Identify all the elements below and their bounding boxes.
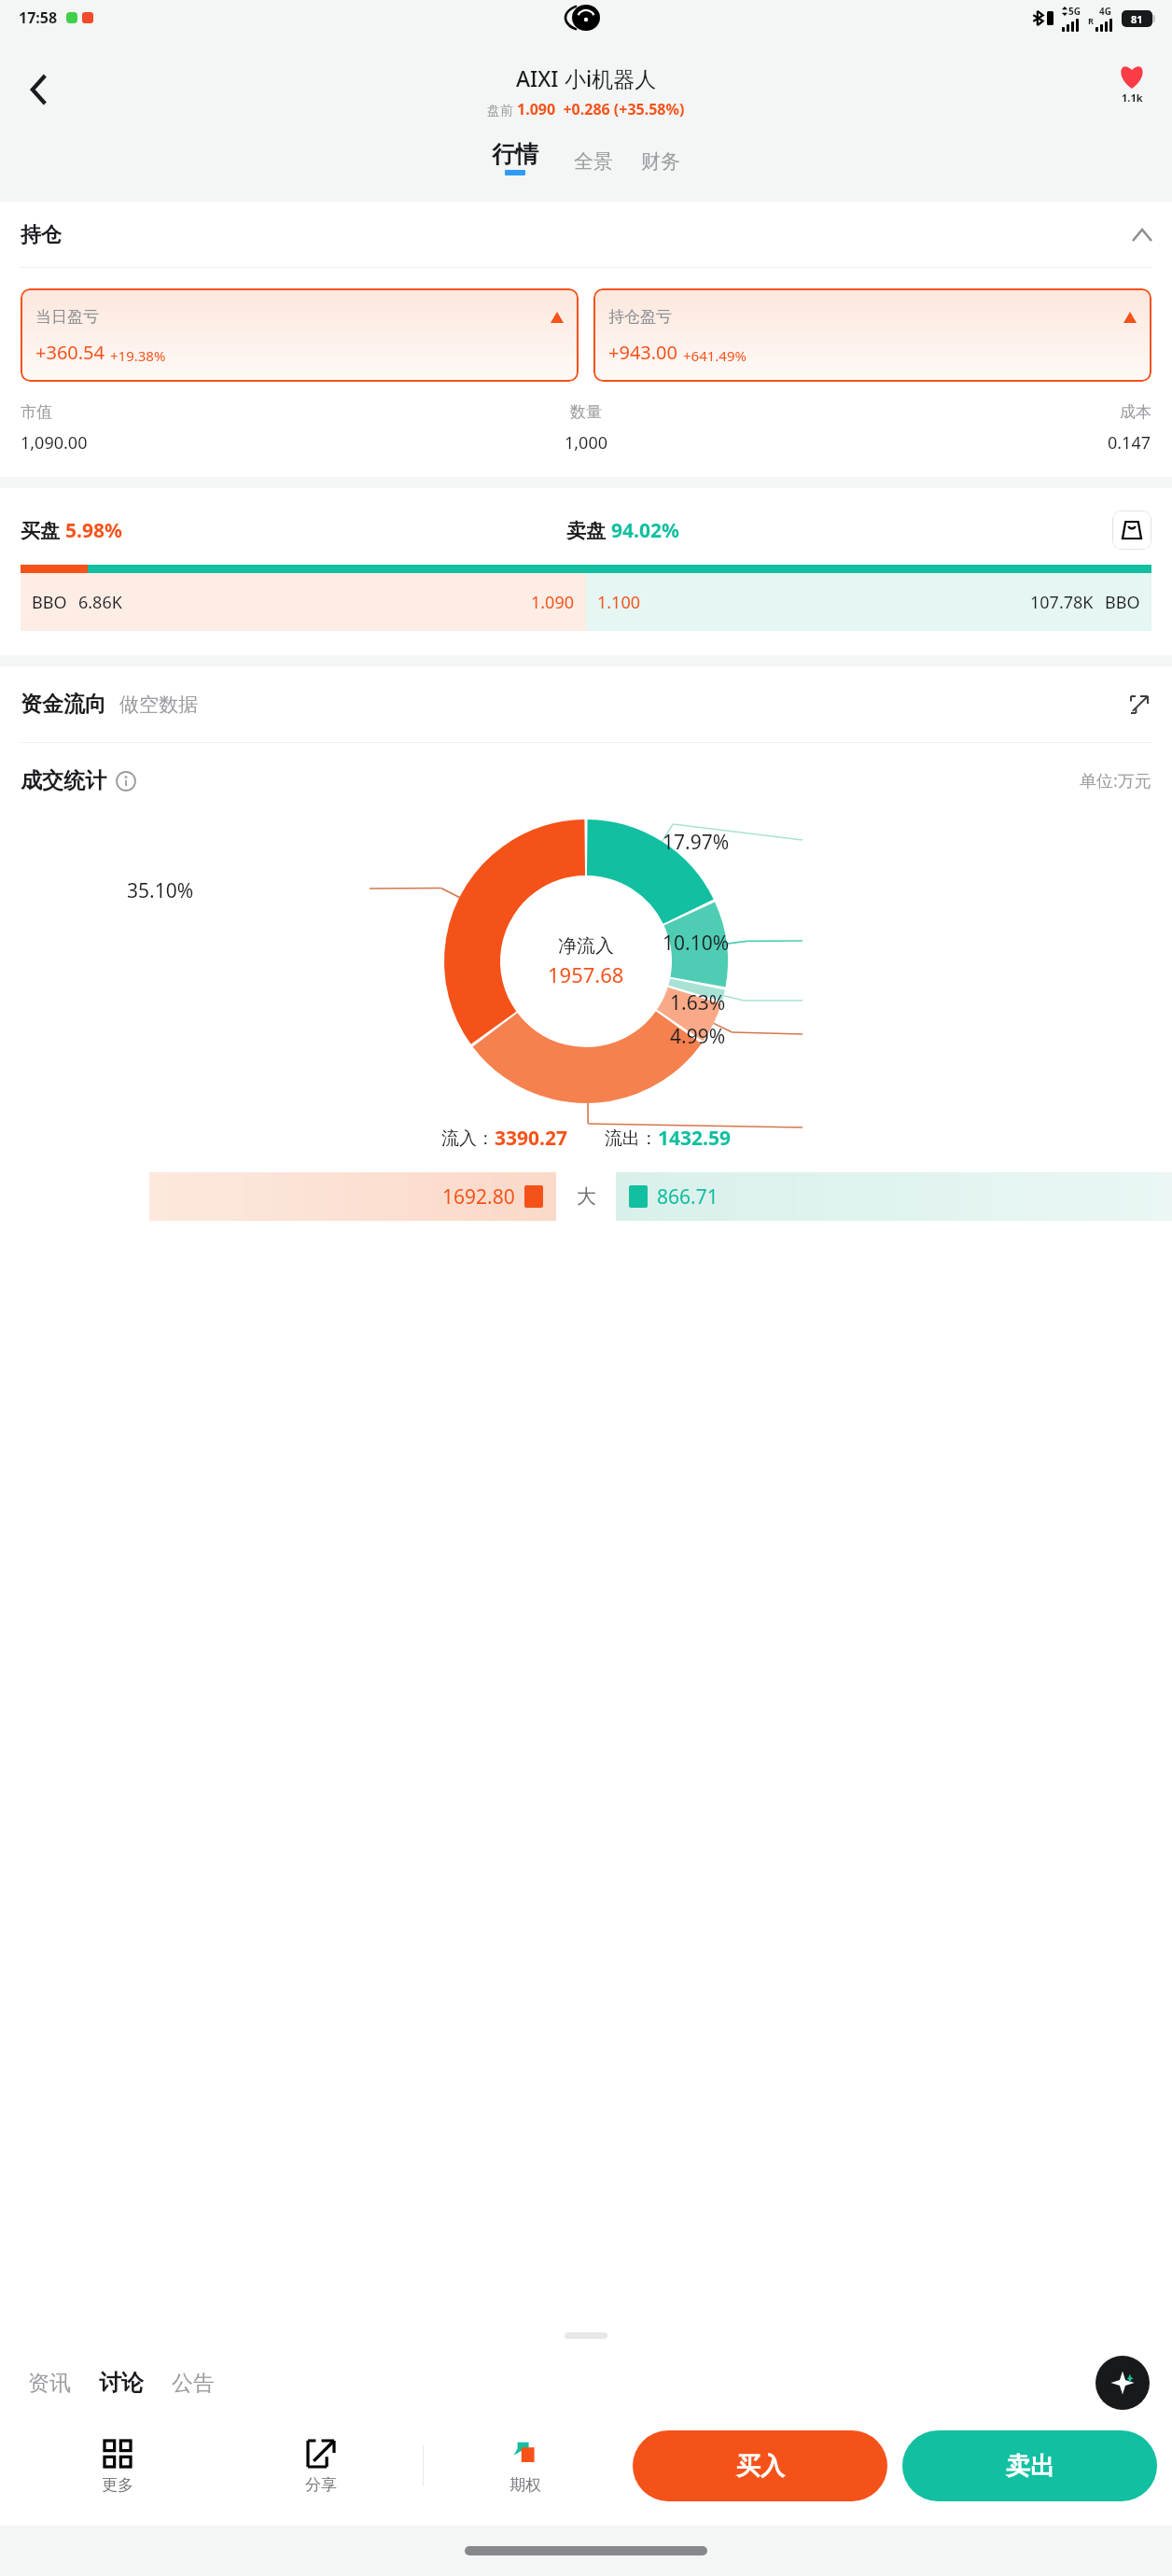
button[interactable]: 期权 (424, 2434, 627, 2499)
staticText: 5G (1068, 5, 1081, 18)
staticText: R (1088, 15, 1094, 26)
button[interactable]: 全景 (568, 147, 619, 175)
button[interactable]: 资金流向 (21, 691, 106, 718)
staticText: 6.86K (78, 591, 122, 614)
staticText: 1.100 (597, 591, 641, 614)
button[interactable]: 公告 (166, 2364, 220, 2402)
staticText: 流出： (605, 1127, 658, 1150)
staticText: +641.49% (683, 346, 746, 365)
staticText: 1,000 (565, 431, 608, 455)
staticText: 行情 (492, 140, 538, 169)
staticText: 5.98% (65, 517, 122, 544)
button[interactable]: 资讯 (22, 2364, 77, 2402)
staticText: +19.38% (110, 346, 166, 365)
staticText: 35.10% (127, 877, 194, 904)
staticText: 更多 (102, 2475, 133, 2495)
staticText: 资金流向 (21, 691, 106, 718)
button[interactable]: AI assistant (1095, 2356, 1150, 2410)
staticText: 1432.59 (658, 1125, 731, 1152)
staticText: AIXI (516, 63, 565, 92)
staticText: 持仓盈亏 (608, 307, 672, 327)
staticText: 流入： (441, 1127, 495, 1150)
staticText: 当日盈亏 (35, 307, 99, 327)
staticText: 分享 (305, 2475, 337, 2495)
staticText: 净流入 (558, 934, 614, 958)
button[interactable]: Back (13, 63, 65, 116)
staticText: 17:58 (19, 7, 58, 28)
staticText: 3390.27 (495, 1125, 567, 1152)
staticText: 买入 (736, 2451, 785, 2482)
staticText: 财务 (641, 149, 680, 174)
staticText: 做空数据 (119, 693, 198, 717)
staticText: 大 (577, 1184, 596, 1209)
staticText: 1.1k (1122, 91, 1143, 105)
staticText: 市值 (21, 402, 52, 422)
staticText: 讨论 (99, 2369, 144, 2397)
button[interactable]: 持仓 (0, 222, 1172, 248)
staticText: 成交统计 (21, 767, 106, 794)
staticText: 持仓 (21, 222, 62, 248)
staticText: 买盘 (21, 519, 60, 543)
staticText: 94.02% (611, 517, 679, 544)
staticText: 4G (1099, 5, 1111, 18)
staticText: 单位:万元 (1080, 769, 1151, 792)
staticText: 全景 (574, 149, 613, 174)
staticText: +943.00 (608, 340, 677, 365)
button[interactable]: 当日盈亏 (21, 288, 579, 382)
button[interactable]: 1.100 (586, 573, 1151, 631)
button[interactable]: Favorite (1118, 63, 1146, 105)
button[interactable]: 行情 (486, 140, 544, 175)
staticText: +360.54 (35, 340, 105, 365)
staticText: 成本 (1120, 402, 1151, 422)
button[interactable]: 持仓盈亏 (593, 288, 1151, 382)
staticText: 数量 (570, 402, 602, 422)
staticText: 4.99% (670, 1023, 726, 1050)
staticText: 资讯 (28, 2370, 71, 2397)
button[interactable]: 卖出 (902, 2430, 1157, 2501)
staticText: 1692.80 (442, 1183, 515, 1211)
staticText: 81 (1131, 12, 1143, 26)
staticText: 1,090.00 (21, 431, 88, 455)
staticText: BBO (32, 591, 67, 614)
staticText: 17.97% (663, 829, 730, 856)
button[interactable]: 财务 (635, 147, 686, 175)
staticText: 公告 (172, 2370, 215, 2397)
staticText: 盘前 (487, 101, 517, 119)
staticText: 107.78K (1030, 591, 1094, 614)
staticText: 1957.68 (548, 960, 624, 988)
staticText: 卖出 (1006, 2451, 1054, 2482)
staticText: 1.090 (531, 591, 575, 614)
staticText: 866.71 (657, 1183, 719, 1211)
staticText: 0.147 (1108, 431, 1151, 455)
button[interactable]: 做空数据 (119, 693, 198, 717)
button[interactable]: 更多 (15, 2434, 219, 2499)
button[interactable]: Order book (1112, 511, 1151, 550)
button[interactable]: 分享 (219, 2434, 423, 2499)
button[interactable]: BBO (21, 573, 586, 631)
staticText: 期权 (509, 2475, 541, 2495)
staticText: 小i机器人 (565, 63, 657, 92)
button[interactable]: 讨论 (93, 2363, 149, 2402)
staticText: 1.63% (670, 989, 726, 1016)
staticText: 10.10% (663, 930, 730, 957)
staticText: 卖盘 (566, 519, 606, 543)
button[interactable]: Open (1127, 693, 1151, 717)
staticText: 1.090 +0.286 (+35.58%) (517, 99, 685, 119)
other: Info (116, 771, 136, 791)
staticText: BBO (1105, 591, 1140, 614)
button[interactable]: 买入 (633, 2430, 887, 2501)
